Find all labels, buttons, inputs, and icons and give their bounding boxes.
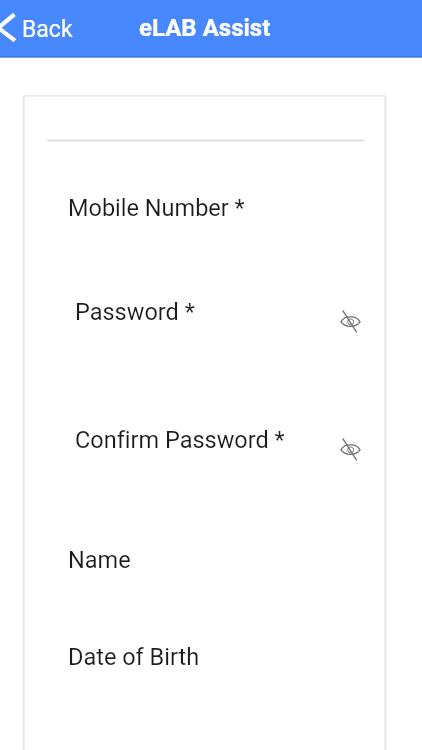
staticText: Date of Birth — [68, 643, 200, 671]
staticText: Confirm Password * — [75, 426, 285, 454]
button[interactable]: Mobile Number * — [24, 174, 385, 238]
staticText: Mobile Number * — [68, 194, 245, 222]
staticText: eLAB Assist — [139, 14, 271, 42]
button[interactable]: Show confirm password — [340, 436, 362, 462]
staticText: Name — [68, 546, 131, 574]
button[interactable]: Name — [24, 526, 385, 590]
button[interactable]: Show password — [340, 308, 362, 334]
staticText: Password * — [75, 298, 195, 326]
button[interactable]: Date of Birth — [24, 623, 385, 687]
button[interactable]: Password * — [24, 278, 385, 342]
button[interactable]: Back — [0, 0, 84, 57]
staticText: Back — [22, 16, 73, 43]
button[interactable]: Confirm Password * — [24, 406, 385, 470]
